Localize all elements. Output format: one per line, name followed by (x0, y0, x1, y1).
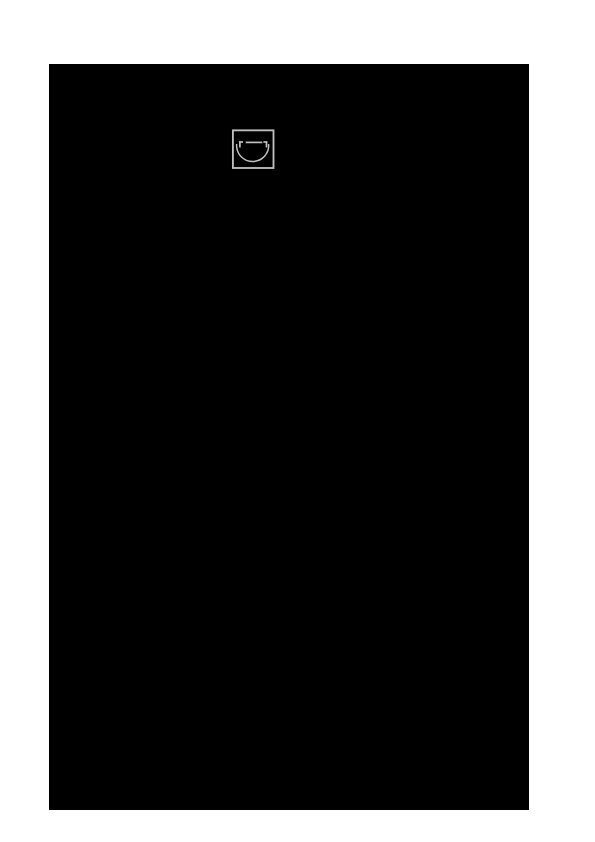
button[interactable]: Image placeholder (232, 130, 274, 169)
